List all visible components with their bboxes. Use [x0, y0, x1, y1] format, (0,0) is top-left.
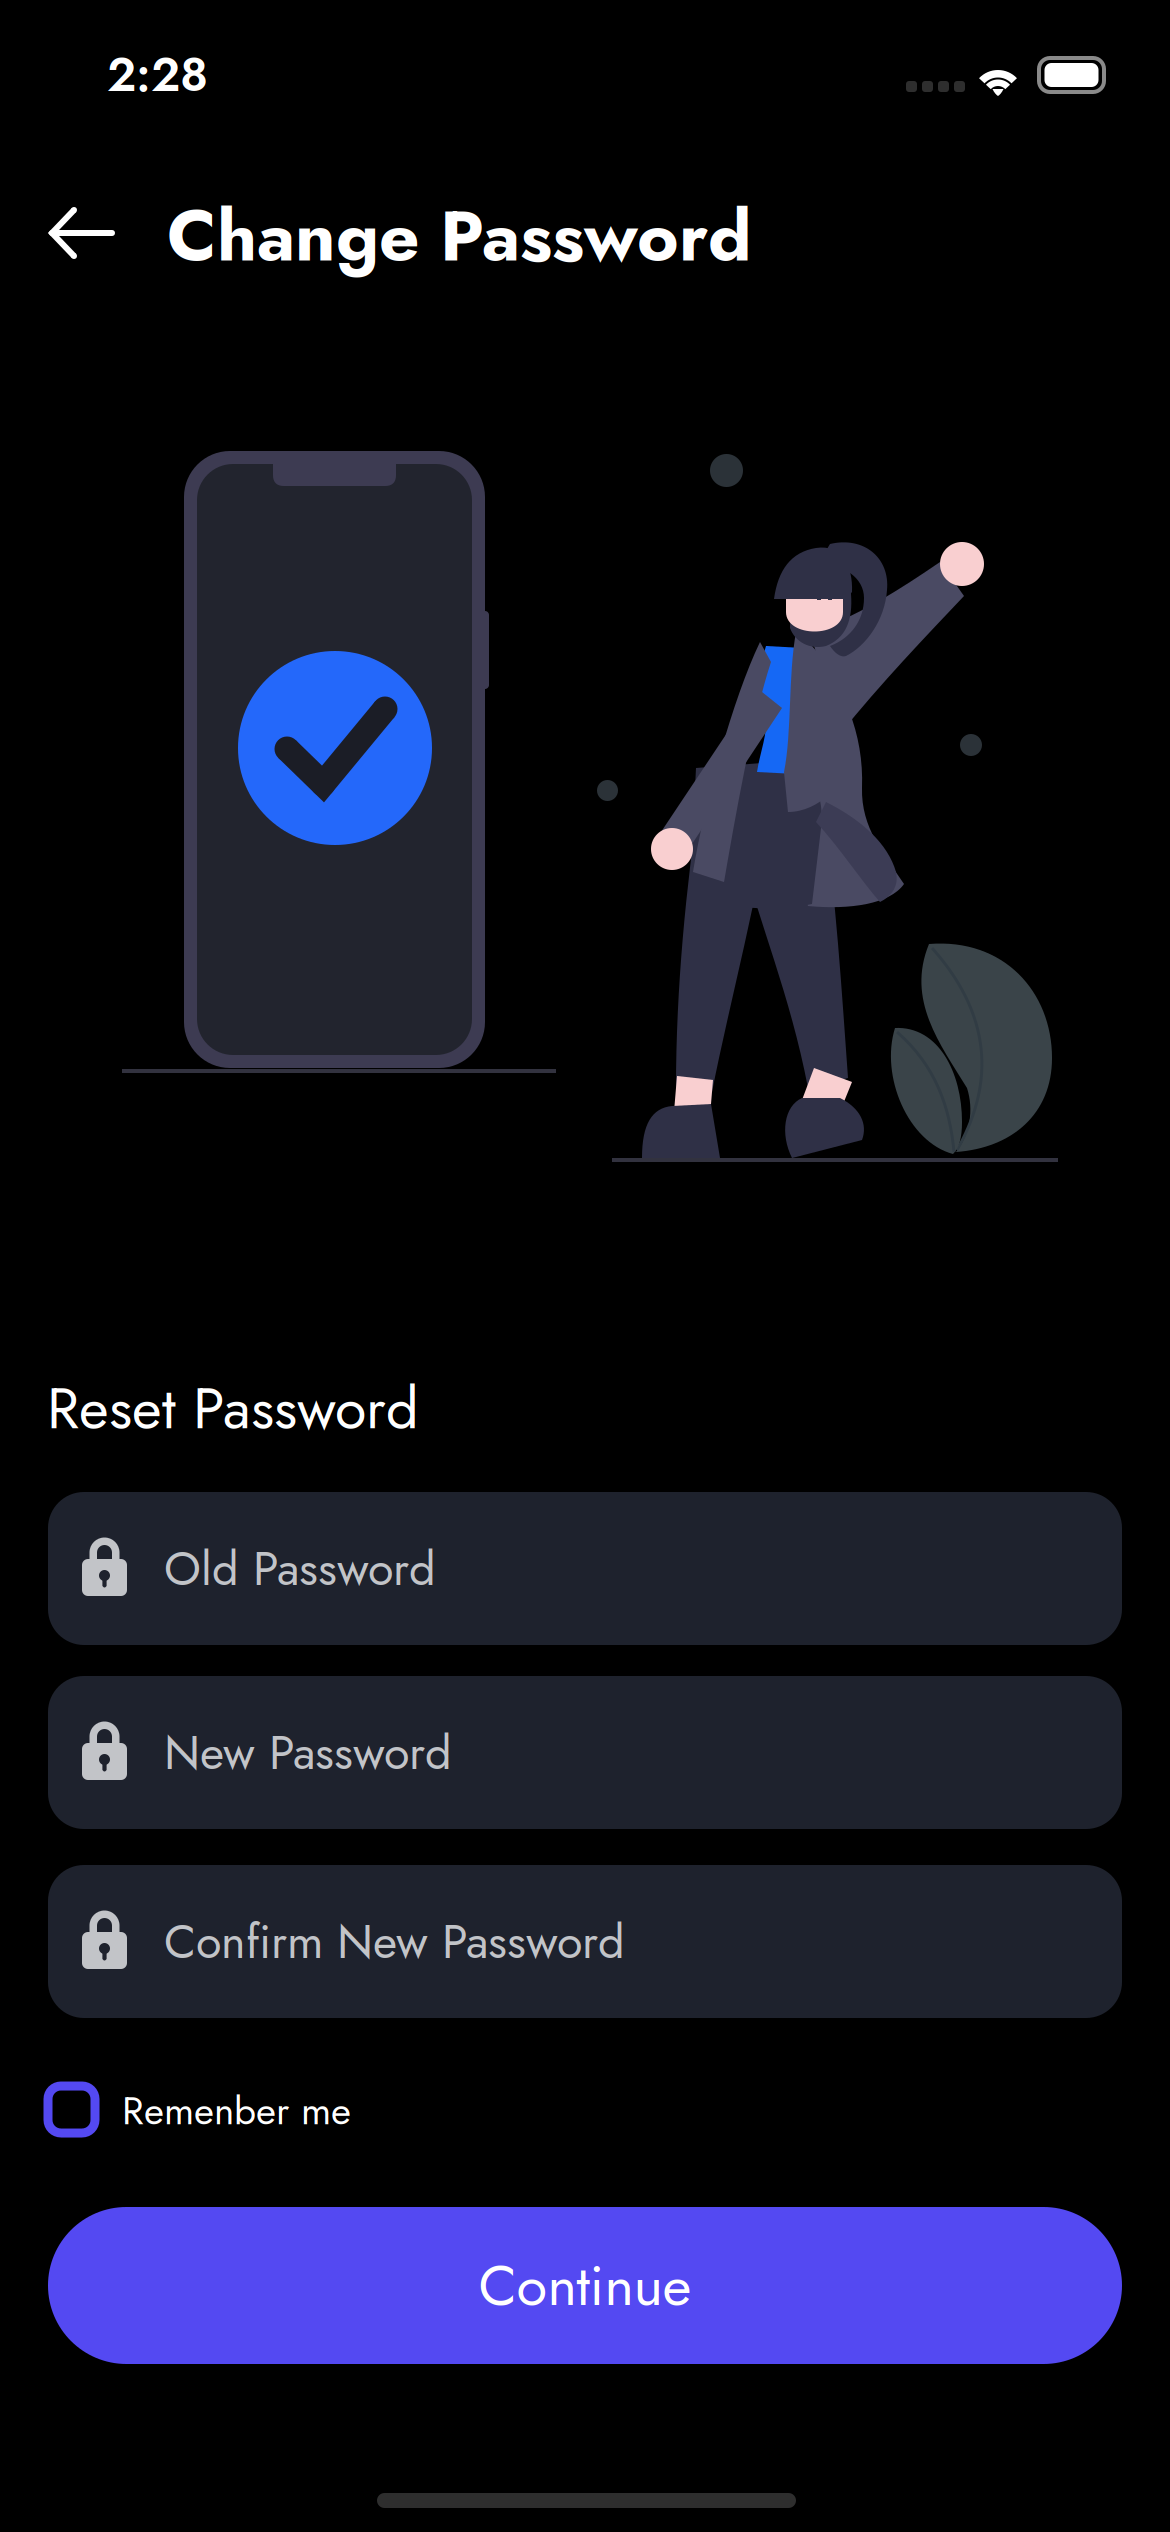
staticText: Old Password: [164, 1535, 436, 1602]
staticText: Continue: [478, 2245, 691, 2326]
button[interactable]: New Password: [48, 1676, 1122, 1829]
staticText: 2:28: [107, 41, 208, 108]
staticText: Confirm New Password: [164, 1908, 625, 1975]
button[interactable]: Confirm New Password: [48, 1865, 1122, 2018]
button[interactable]: Continue: [48, 2207, 1122, 2364]
staticText: Change Password: [167, 185, 752, 287]
staticText: New Password: [164, 1719, 452, 1786]
staticText: Remenber me: [122, 2083, 351, 2139]
button[interactable]: Remenber me: [48, 2077, 468, 2141]
button[interactable]: Old Password: [48, 1492, 1122, 1645]
button[interactable]: Back: [30, 176, 162, 292]
staticText: Reset Password: [47, 1367, 419, 1450]
